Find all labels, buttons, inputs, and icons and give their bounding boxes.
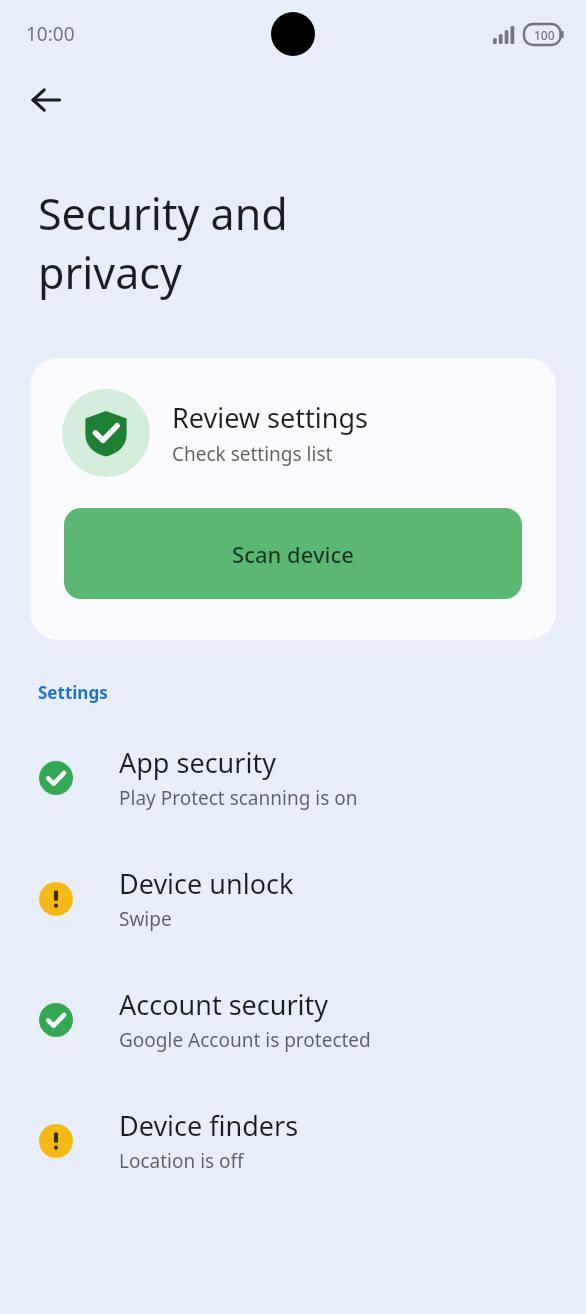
staticText: Security and bbox=[38, 184, 288, 243]
button[interactable]: Device unlock bbox=[0, 861, 586, 936]
button[interactable]: Back bbox=[14, 68, 78, 132]
staticText: Device unlock bbox=[119, 865, 294, 902]
staticText: Check settings list bbox=[172, 441, 333, 467]
staticText: Account security bbox=[119, 986, 329, 1023]
button[interactable]: Review settings bbox=[30, 358, 556, 640]
button[interactable]: Device finders bbox=[0, 1103, 586, 1178]
staticText: 100 bbox=[534, 27, 555, 43]
staticText: Device finders bbox=[119, 1107, 299, 1144]
button[interactable]: Scan device bbox=[64, 508, 522, 599]
staticText: Scan device bbox=[232, 539, 354, 569]
staticText: Play Protect scanning is on bbox=[119, 785, 358, 811]
button[interactable]: App security bbox=[0, 740, 586, 815]
staticText: Settings bbox=[38, 681, 108, 704]
staticText: Swipe bbox=[119, 906, 172, 932]
staticText: Location is off bbox=[119, 1148, 244, 1174]
staticText: Review settings bbox=[172, 399, 368, 436]
staticText: Google Account is protected bbox=[119, 1027, 371, 1053]
staticText: privacy bbox=[38, 243, 182, 302]
button[interactable]: Account security bbox=[0, 982, 586, 1057]
staticText: 10:00 bbox=[26, 21, 75, 47]
staticText: App security bbox=[119, 744, 276, 781]
